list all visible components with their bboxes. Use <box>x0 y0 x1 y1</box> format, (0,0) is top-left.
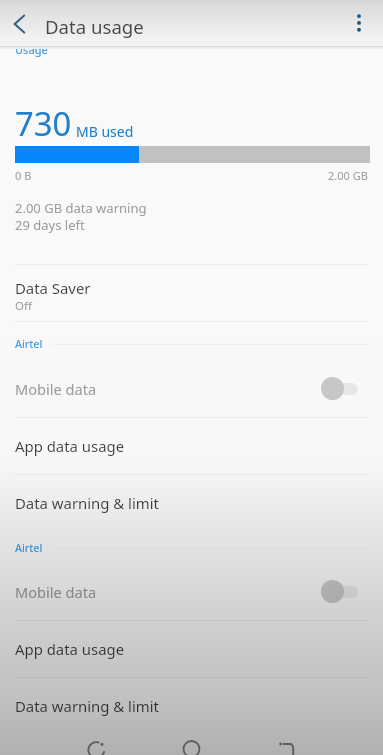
staticText: Airtel <box>15 541 43 555</box>
button[interactable]: More options <box>339 0 379 46</box>
staticText: Data warning & limit <box>15 696 159 716</box>
staticText: Mobile data <box>15 582 97 602</box>
button[interactable]: Navigate up <box>0 0 40 46</box>
button[interactable]: Home <box>163 735 220 755</box>
button[interactable]: Recent apps <box>258 735 315 755</box>
staticText: Airtel <box>15 337 43 351</box>
staticText: 2.00 GB data warning <box>15 199 147 217</box>
staticText: Data usage <box>45 14 144 39</box>
button[interactable]: Mobile data <box>0 563 383 620</box>
button[interactable]: Data warning & limit <box>0 677 383 734</box>
staticText: MB used <box>76 122 134 141</box>
button[interactable]: Data warning & limit <box>0 474 383 531</box>
staticText: 730 <box>15 101 72 146</box>
staticText: Data Saver <box>15 278 91 298</box>
button[interactable]: Data Saver <box>0 264 383 321</box>
button[interactable]: Mobile data <box>0 360 383 417</box>
staticText: Data warning & limit <box>15 493 159 513</box>
staticText: Off <box>15 298 32 314</box>
staticText: Usage <box>15 42 48 57</box>
staticText: 2.00 GB <box>328 168 368 183</box>
staticText: Mobile data <box>15 379 97 399</box>
button[interactable]: App data usage <box>0 620 383 677</box>
staticText: App data usage <box>15 436 125 456</box>
staticText: 0 B <box>15 168 32 183</box>
staticText: App data usage <box>15 639 125 659</box>
staticText: 29 days left <box>15 216 85 234</box>
button[interactable]: Back <box>68 735 125 755</box>
button[interactable]: App data usage <box>0 417 383 474</box>
